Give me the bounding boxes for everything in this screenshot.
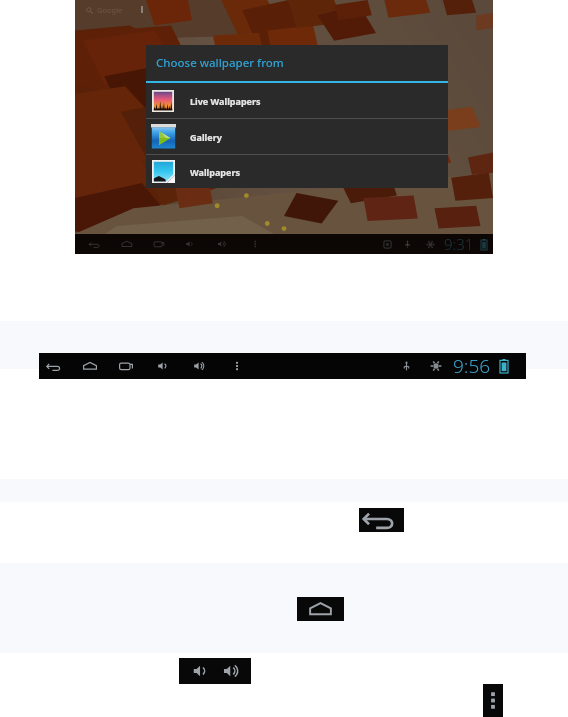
staticText: Gallery [190, 131, 222, 143]
staticText: Wallpapers [190, 166, 240, 178]
button[interactable]: Live Wallpapers [146, 83, 448, 118]
button[interactable]: Navigation icon [297, 597, 344, 621]
staticText: Live Wallpapers [190, 95, 261, 107]
button[interactable]: Navigation icon [483, 684, 503, 717]
button[interactable]: Wallpapers [146, 155, 448, 188]
staticText: Choose wallpaper from [156, 55, 284, 71]
staticText: Google [97, 5, 123, 15]
staticText: 9:31 [444, 234, 474, 254]
button[interactable]: Navigation icon [179, 658, 251, 684]
staticText: 9:56 [453, 353, 491, 379]
button[interactable]: Navigation icon [359, 508, 404, 532]
button[interactable]: Gallery [146, 119, 448, 154]
